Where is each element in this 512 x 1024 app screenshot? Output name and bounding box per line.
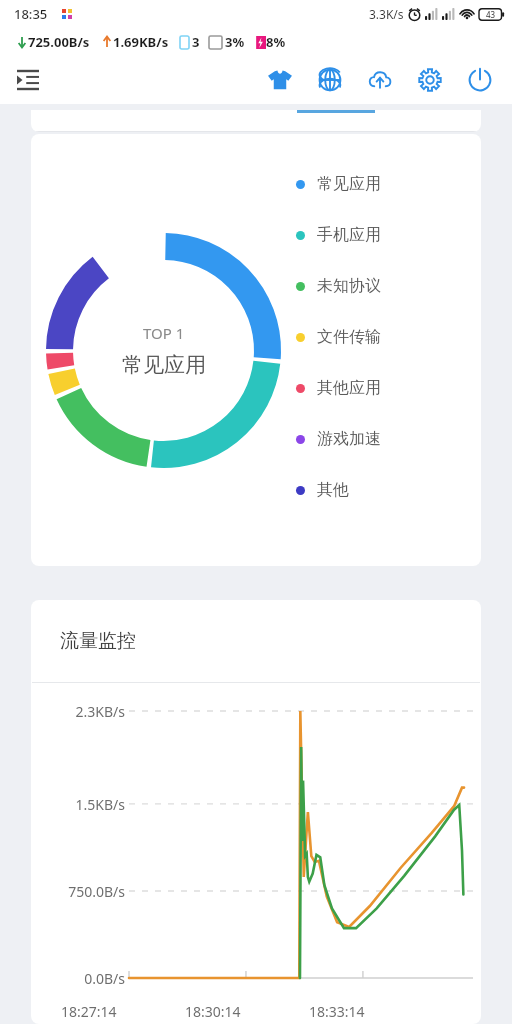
button[interactable]: Settings	[410, 60, 450, 100]
button[interactable]: 其他	[296, 480, 349, 500]
staticText: 750.0B/s	[53, 882, 125, 901]
staticText: 18:30:14	[185, 1002, 241, 1021]
button[interactable]: Power	[460, 60, 500, 100]
staticText: 18:35	[14, 5, 48, 23]
button[interactable]: 其他应用	[296, 378, 381, 398]
button[interactable]: Upload	[360, 60, 400, 100]
staticText: 常见应用	[317, 174, 381, 194]
button[interactable]: 未知协议	[296, 276, 381, 296]
button[interactable]: 文件传输	[296, 327, 381, 347]
staticText: 流量监控	[60, 629, 136, 653]
staticText: 3	[192, 33, 200, 51]
staticText: 8%	[266, 33, 286, 51]
staticText: TOP 1	[143, 323, 185, 343]
staticText: 725.00B/s	[28, 33, 90, 51]
staticText: 43	[486, 9, 496, 20]
staticText: 未知协议	[317, 276, 381, 296]
staticText: 游戏加速	[317, 429, 381, 449]
staticText: 1.5KB/s	[53, 795, 125, 814]
staticText: 0.0B/s	[53, 969, 125, 988]
staticText: 2.3KB/s	[53, 702, 125, 721]
staticText: 文件传输	[317, 327, 381, 347]
button[interactable]: 常见应用	[296, 174, 381, 194]
staticText: 3.3K/s	[369, 6, 404, 22]
button[interactable]: 手机应用	[296, 225, 381, 245]
staticText: 18:33:14	[309, 1002, 365, 1021]
button[interactable]: Network	[310, 60, 350, 100]
button[interactable]: 游戏加速	[296, 429, 381, 449]
staticText: 其他应用	[317, 378, 381, 398]
staticText: 1.69KB/s	[113, 33, 169, 51]
staticText: 3%	[225, 33, 245, 51]
staticText: 手机应用	[317, 225, 381, 245]
button[interactable]: Theme	[260, 60, 300, 100]
staticText: 常见应用	[122, 352, 206, 378]
staticText: 18:27:14	[61, 1002, 117, 1021]
staticText: 其他	[317, 480, 349, 500]
button[interactable]: Menu	[8, 60, 48, 100]
